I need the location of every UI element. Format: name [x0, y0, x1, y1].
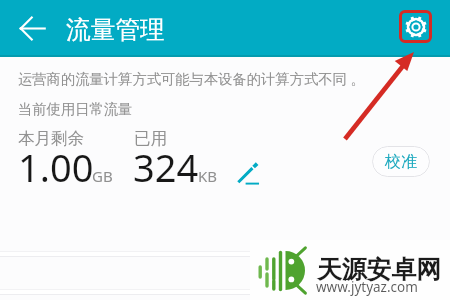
- button[interactable]: Edit: [234, 160, 262, 188]
- button[interactable]: Settings: [400, 11, 432, 43]
- staticText: 已用: [134, 128, 167, 149]
- staticText: 校准: [385, 152, 417, 172]
- staticText: 运营商的流量计算方式可能与本设备的计算方式不同 。: [18, 69, 365, 89]
- staticText: GB: [92, 166, 113, 186]
- button[interactable]: 校准: [372, 146, 430, 177]
- staticText: 流量管理: [66, 14, 165, 45]
- staticText: 天源安卓网: [317, 254, 441, 285]
- staticText: 当前使用日常流量: [18, 100, 133, 118]
- button[interactable]: Back: [14, 10, 51, 47]
- staticText: www.jytyaz.com: [316, 278, 418, 296]
- staticText: KB: [198, 166, 218, 186]
- staticText: 1.00: [18, 141, 94, 193]
- staticText: 324: [133, 141, 199, 193]
- staticText: 本月剩余: [18, 128, 84, 149]
